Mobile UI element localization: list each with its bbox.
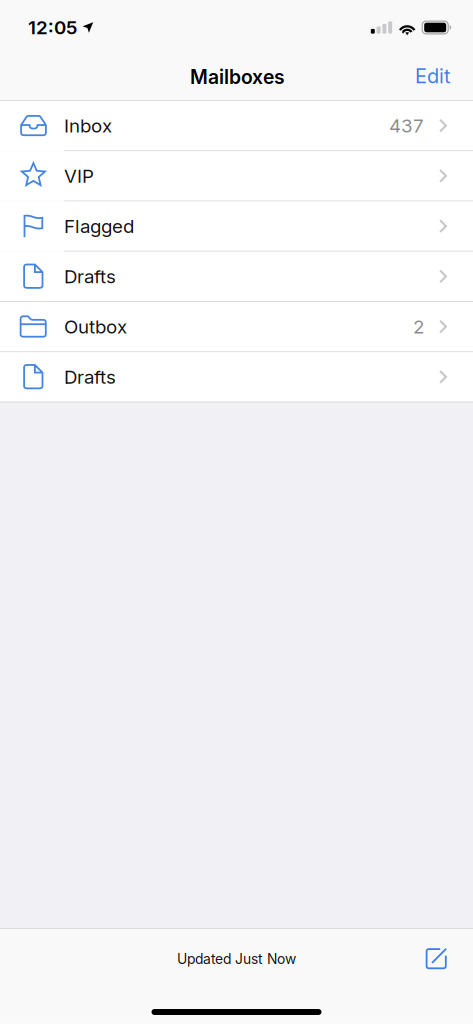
staticText: Drafts [64,265,116,288]
button[interactable]: Drafts [0,352,473,401]
button[interactable]: Outbox [0,302,473,351]
staticText: Updated Just Now [177,951,296,967]
button[interactable]: Drafts [0,252,473,301]
staticText: Inbox [64,114,112,137]
button[interactable]: Compose [416,938,457,979]
staticText: 12:05 [28,16,77,39]
button[interactable]: Edit [405,56,461,96]
staticText: Flagged [64,215,134,237]
staticText: 437 [389,114,424,137]
staticText: VIP [64,165,94,187]
staticText: Edit [415,64,451,88]
button[interactable]: Flagged [0,201,473,251]
button[interactable]: Inbox [0,101,473,150]
staticText: 2 [413,315,424,338]
staticText: Drafts [64,366,116,388]
button[interactable]: VIP [0,151,473,200]
staticText: Outbox [64,315,127,338]
staticText: Mailboxes [190,65,285,89]
